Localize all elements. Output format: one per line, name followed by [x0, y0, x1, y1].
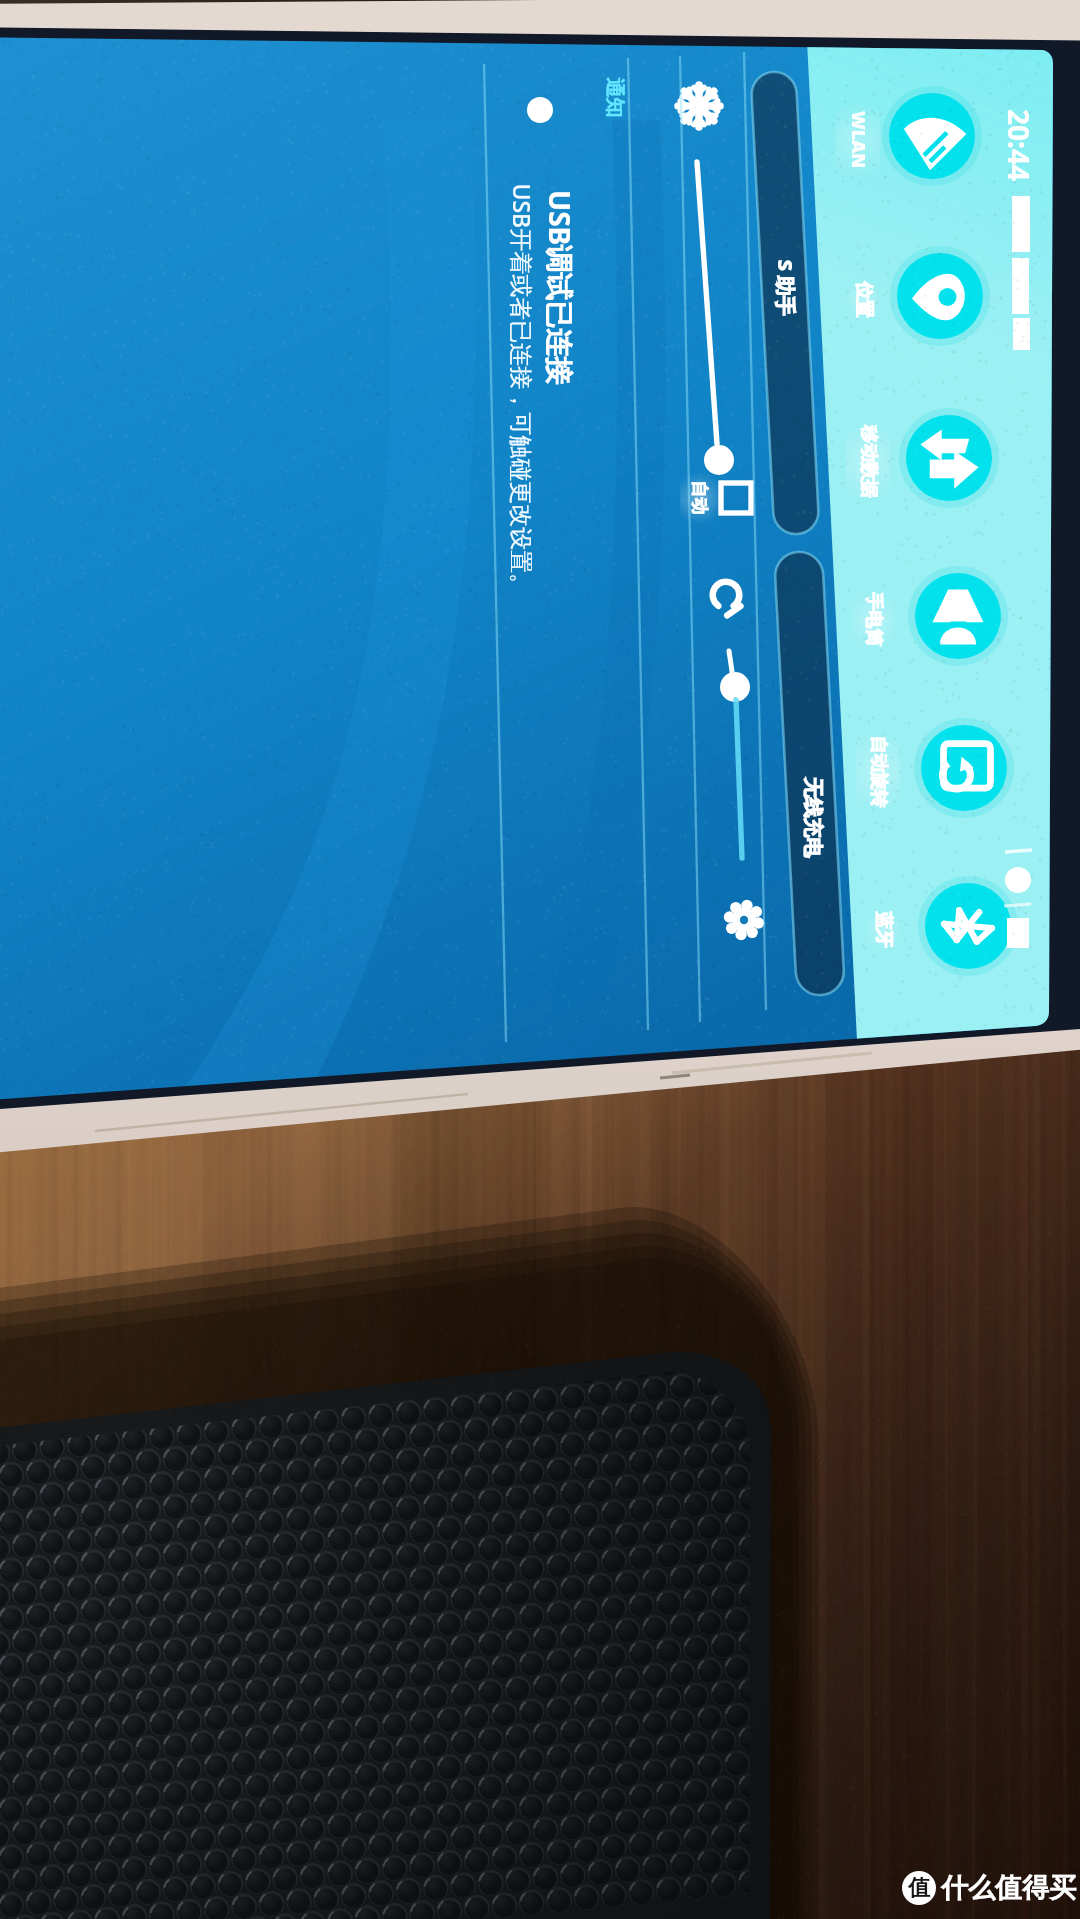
- button[interactable]: Location: [894, 250, 986, 342]
- button[interactable]: WLAN: [886, 90, 978, 182]
- button[interactable]: Volume slider: [706, 580, 766, 940]
- button[interactable]: Settings: [722, 898, 768, 944]
- button[interactable]: Wireless charging: [774, 552, 846, 997]
- button[interactable]: Auto rotate: [918, 722, 1010, 814]
- button[interactable]: USB debugging connected notification: [450, 60, 620, 660]
- button[interactable]: S Assistant: [750, 72, 822, 536]
- button[interactable]: Flashlight: [912, 570, 1004, 662]
- button[interactable]: Brightness slider: [680, 90, 740, 530]
- button[interactable]: Bluetooth: [922, 880, 1014, 972]
- button[interactable]: Mobile data: [903, 412, 995, 504]
